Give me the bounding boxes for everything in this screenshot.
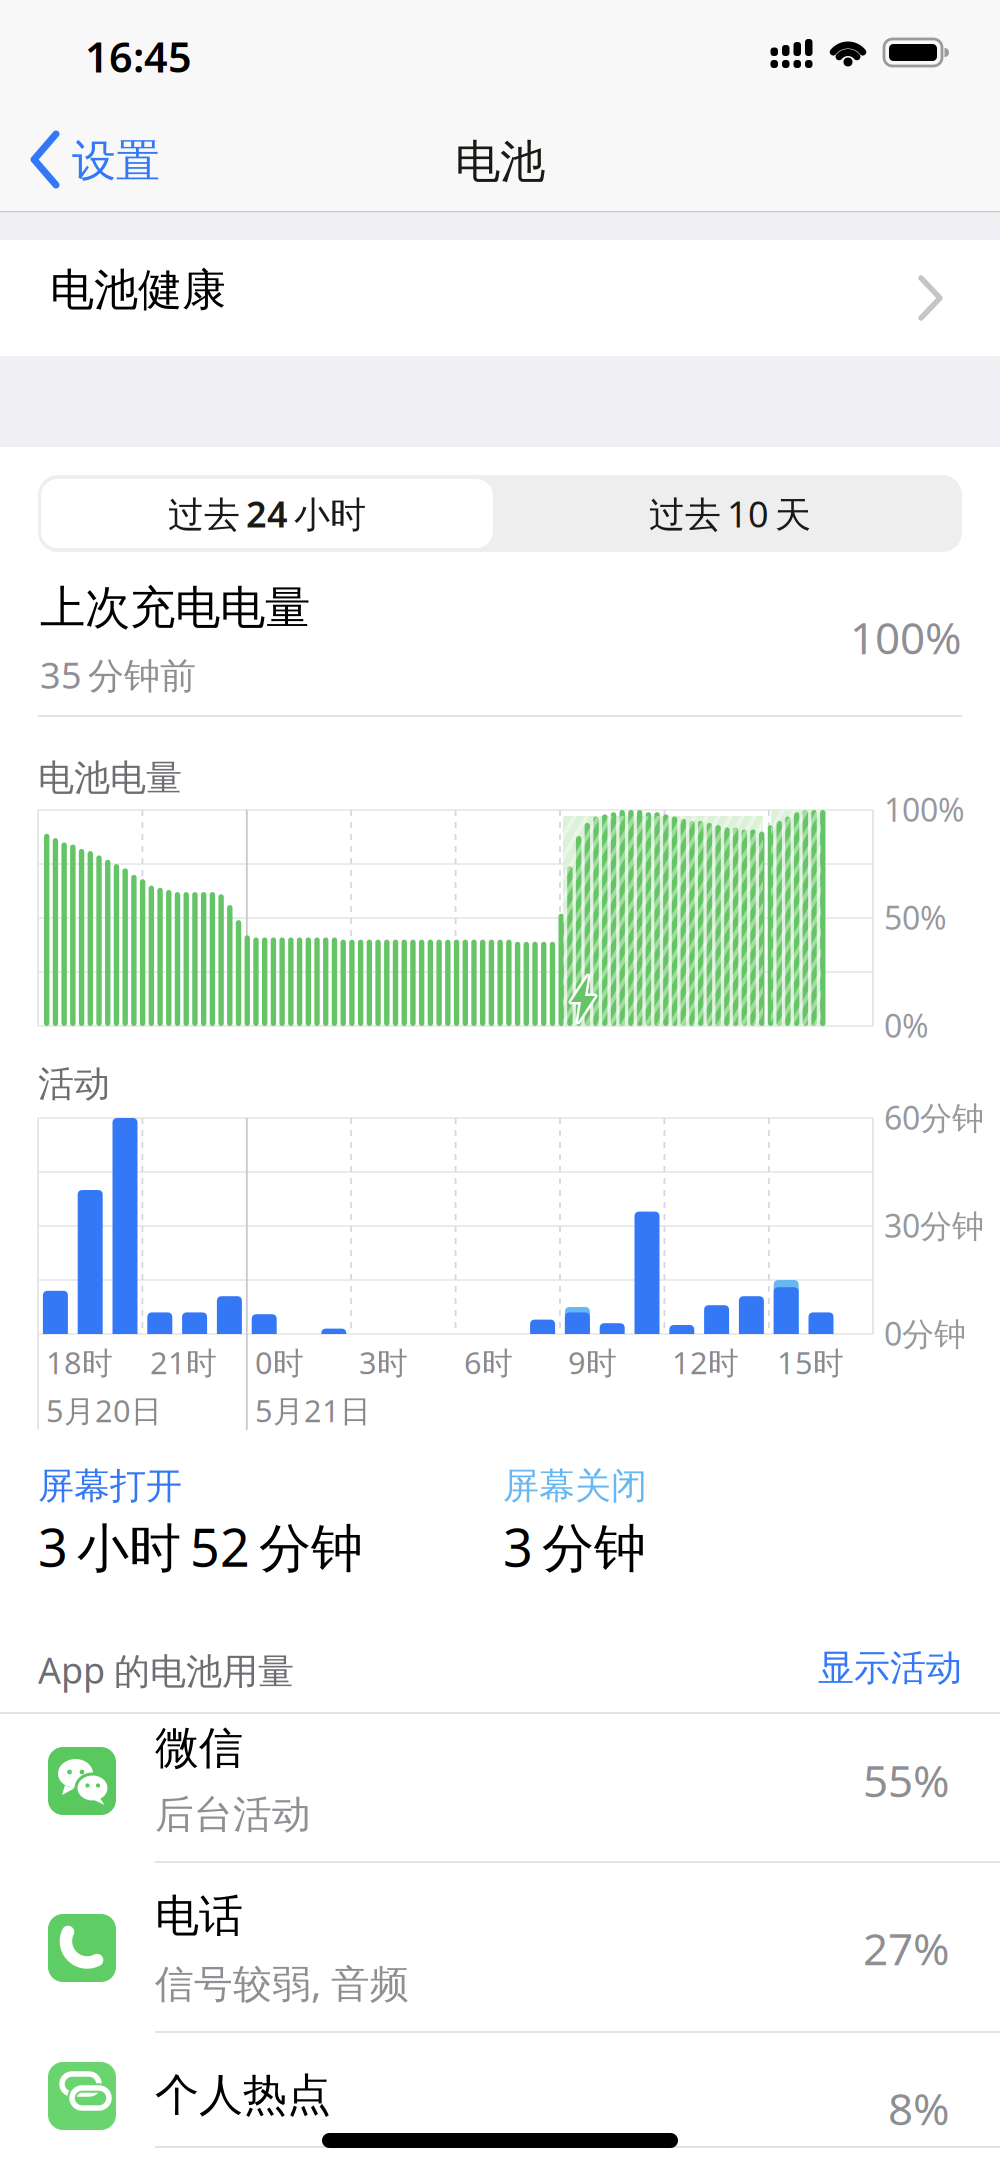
staticText: 3时 — [359, 1342, 408, 1383]
button[interactable]: 显示活动 — [0, 1646, 962, 1690]
staticText: 0% — [884, 1004, 929, 1046]
staticText: 0时 — [255, 1342, 304, 1383]
staticText: 55% — [863, 1751, 950, 1809]
staticText: 27% — [863, 1919, 950, 1977]
staticText: 信号较弱, 音频 — [155, 1957, 409, 2008]
button[interactable]: 设置 — [0, 0, 170, 211]
button[interactable]: 电池健康 — [0, 240, 1000, 356]
staticText: 上次充电电量 — [40, 580, 310, 636]
staticText: 显示活动 — [818, 1646, 962, 1690]
staticText: 屏幕打开 — [38, 1464, 182, 1508]
staticText: 35 分钟前 — [40, 651, 196, 699]
button[interactable]: 过去 24 小时 — [41, 479, 493, 548]
staticText: 电话 — [155, 1889, 243, 1943]
staticText: 6时 — [464, 1342, 513, 1383]
staticText: 8% — [888, 2079, 950, 2137]
staticText: 后台活动 — [155, 1791, 311, 1838]
staticText: 21时 — [150, 1342, 217, 1383]
staticText: 0分钟 — [884, 1312, 966, 1354]
staticText: 过去 24 小时 — [168, 490, 366, 537]
button[interactable]: 微信 — [0, 1697, 1000, 1847]
staticText: 5月21日 — [255, 1390, 371, 1431]
staticText: 微信 — [155, 1721, 243, 1775]
staticText: 屏幕关闭 — [503, 1464, 647, 1508]
staticText: 18时 — [46, 1342, 113, 1383]
staticText: 15时 — [777, 1342, 844, 1383]
staticText: App 的电池用量 — [38, 1646, 294, 1694]
staticText: 100% — [884, 788, 965, 830]
staticText: 过去 10 天 — [649, 490, 811, 537]
staticText: 60分钟 — [884, 1096, 984, 1138]
staticText: 电池健康 — [50, 263, 226, 317]
button[interactable]: 个人热点 — [0, 2068, 1000, 2164]
staticText: 活动 — [38, 1062, 110, 1106]
staticText: 电池电量 — [38, 756, 182, 800]
staticText: 3 分钟 — [503, 1512, 646, 1581]
staticText: 5月20日 — [46, 1390, 162, 1431]
staticText: 3 小时 52 分钟 — [38, 1512, 363, 1581]
staticText: 9时 — [568, 1342, 617, 1383]
staticText: 12时 — [672, 1342, 739, 1383]
staticText: 16:45 — [85, 29, 192, 84]
staticText: 100% — [850, 608, 962, 666]
staticText: 30分钟 — [884, 1204, 984, 1246]
staticText: 50% — [884, 896, 947, 938]
button[interactable]: 过去 10 天 — [520, 479, 940, 548]
staticText: 个人热点 — [155, 2068, 331, 2122]
staticText: 设置 — [72, 134, 160, 188]
staticText: 电池 — [455, 134, 545, 190]
button[interactable]: 电话 — [0, 1865, 1000, 2015]
